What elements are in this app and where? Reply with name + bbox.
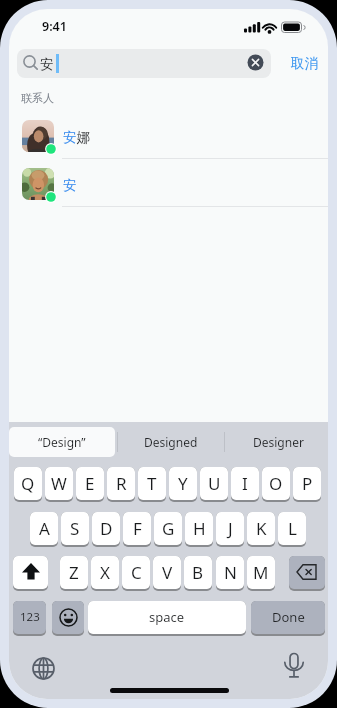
button[interactable]: Designed bbox=[118, 427, 224, 457]
button[interactable] bbox=[289, 556, 325, 591]
staticText: V bbox=[162, 561, 173, 584]
button[interactable]: C bbox=[122, 556, 150, 591]
button[interactable]: V bbox=[153, 556, 181, 591]
button[interactable]: I bbox=[231, 467, 259, 502]
button[interactable]: O bbox=[262, 467, 290, 502]
button[interactable]: E bbox=[76, 467, 104, 502]
staticText: 取消 bbox=[291, 55, 318, 72]
button[interactable]: M bbox=[247, 556, 275, 591]
button[interactable] bbox=[247, 54, 264, 71]
staticText: N bbox=[224, 561, 237, 584]
button[interactable]: A bbox=[30, 512, 58, 547]
staticText: H bbox=[193, 517, 206, 540]
staticText: W bbox=[51, 472, 67, 495]
button[interactable]: J bbox=[216, 512, 244, 547]
staticText: Done bbox=[272, 608, 305, 626]
button[interactable]: Y bbox=[169, 467, 197, 502]
button[interactable]: “Design” bbox=[9, 427, 115, 457]
staticText: Designer bbox=[253, 434, 304, 450]
button[interactable]: Done bbox=[251, 601, 325, 636]
staticText: “Design” bbox=[38, 434, 86, 450]
staticText: 联系人 bbox=[21, 91, 54, 105]
button[interactable]: B bbox=[184, 556, 212, 591]
staticText: Y bbox=[178, 472, 188, 495]
staticText: C bbox=[131, 561, 142, 584]
staticText: F bbox=[133, 517, 142, 540]
staticText: G bbox=[162, 517, 175, 540]
button[interactable]: P bbox=[293, 467, 321, 502]
button[interactable]: T bbox=[138, 467, 166, 502]
button[interactable]: L bbox=[278, 512, 306, 547]
staticText: I bbox=[242, 472, 248, 495]
button[interactable]: D bbox=[92, 512, 120, 547]
staticText: O bbox=[269, 472, 283, 495]
staticText: U bbox=[208, 472, 221, 495]
staticText: 安娜 bbox=[63, 129, 90, 146]
staticText: M bbox=[253, 561, 269, 584]
button[interactable] bbox=[32, 657, 55, 680]
button[interactable]: H bbox=[185, 512, 213, 547]
button[interactable]: X bbox=[91, 556, 119, 591]
button[interactable] bbox=[52, 601, 84, 636]
button[interactable]: G bbox=[154, 512, 182, 547]
staticText: 9:41 bbox=[42, 18, 67, 35]
button[interactable]: 取消 bbox=[283, 51, 325, 76]
button[interactable]: F bbox=[123, 512, 151, 547]
staticText: J bbox=[228, 517, 233, 540]
staticText: Q bbox=[21, 472, 35, 495]
staticText: X bbox=[100, 561, 110, 584]
button[interactable]: N bbox=[216, 556, 244, 591]
staticText: space bbox=[149, 608, 185, 626]
staticText: R bbox=[116, 472, 127, 495]
staticText: T bbox=[147, 472, 157, 495]
staticText: P bbox=[302, 472, 313, 495]
staticText: D bbox=[100, 517, 113, 540]
staticText: 安 bbox=[63, 177, 77, 194]
button[interactable]: 安 bbox=[9, 159, 328, 206]
button[interactable]: space bbox=[88, 601, 246, 636]
staticText: B bbox=[192, 561, 204, 584]
button[interactable]: W bbox=[45, 467, 73, 502]
staticText: 安 bbox=[40, 56, 54, 73]
button[interactable]: R bbox=[107, 467, 135, 502]
staticText: A bbox=[39, 517, 50, 540]
button[interactable]: 安 bbox=[17, 49, 271, 78]
button[interactable]: Z bbox=[60, 556, 88, 591]
button[interactable]: 123 bbox=[13, 601, 46, 636]
button[interactable]: Q bbox=[14, 467, 42, 502]
staticText: 123 bbox=[20, 609, 40, 625]
button[interactable]: 安娜 bbox=[9, 111, 328, 158]
staticText: K bbox=[256, 517, 267, 540]
staticText: Designed bbox=[144, 434, 198, 450]
staticText: Z bbox=[69, 561, 79, 584]
button[interactable] bbox=[13, 556, 48, 591]
staticText: L bbox=[288, 517, 297, 540]
button[interactable]: K bbox=[247, 512, 275, 547]
button[interactable] bbox=[283, 653, 305, 679]
staticText: E bbox=[85, 472, 95, 495]
button[interactable]: Designer bbox=[225, 427, 328, 457]
button[interactable]: S bbox=[61, 512, 89, 547]
staticText: S bbox=[70, 517, 80, 540]
button[interactable]: U bbox=[200, 467, 228, 502]
